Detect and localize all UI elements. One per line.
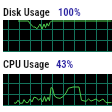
button[interactable]: [3, 20, 112, 52]
button[interactable]: [3, 74, 112, 106]
staticText: 100%: [58, 6, 81, 18]
staticText: Disk Usage: [3, 6, 50, 18]
button[interactable]: Disk Usage: [0, 4, 112, 20]
button[interactable]: CPU Usage: [0, 56, 112, 72]
staticText: CPU Usage: [3, 58, 50, 70]
staticText: 43%: [56, 58, 74, 70]
